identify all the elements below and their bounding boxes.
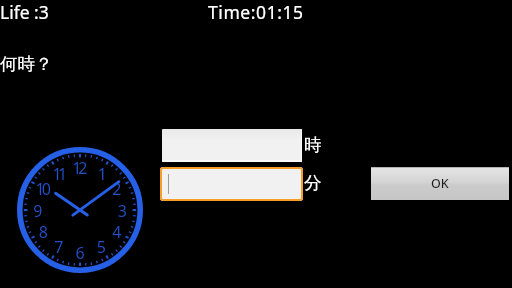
staticText: 時 — [304, 134, 322, 156]
staticText: OK — [431, 175, 449, 192]
staticText: Time:01:15 — [208, 0, 304, 24]
button[interactable]: Minute input — [160, 167, 303, 201]
staticText: 何時？ — [0, 53, 53, 75]
staticText: Life :3 — [0, 0, 49, 24]
button[interactable]: OK — [371, 167, 509, 200]
staticText: 分 — [304, 172, 322, 194]
button[interactable]: Hour input — [162, 129, 302, 162]
